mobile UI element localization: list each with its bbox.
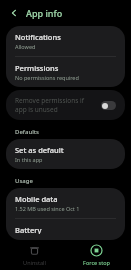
staticText: Permissions: [15, 63, 59, 73]
button[interactable]: Uninstall: [7, 241, 62, 269]
staticText: Remove permissions if app is unused: [15, 96, 96, 114]
button[interactable]: Force stop: [69, 241, 124, 269]
staticText: Allowed: [15, 43, 36, 50]
staticText: 1.52 MB used since Oct 1: [15, 205, 80, 212]
staticText: Force stop: [83, 259, 110, 266]
staticText: Battery: [15, 225, 42, 234]
staticText: Uninstall: [23, 259, 46, 266]
button[interactable]: Set as default: [6, 139, 125, 169]
staticText: Notifications: [15, 32, 61, 42]
staticText: App info: [26, 7, 63, 19]
staticText: Mobile data: [15, 194, 58, 204]
button[interactable]: Back: [7, 6, 21, 20]
button[interactable]: Mobile data: [6, 188, 125, 218]
button[interactable]: Remove permissions if app is unused: [6, 90, 125, 120]
button[interactable]: Notifications: [6, 26, 125, 56]
staticText: Set as default: [15, 145, 64, 155]
staticText: Usage: [15, 177, 33, 185]
staticText: Defaults: [15, 128, 40, 136]
button[interactable]: Permissions: [6, 57, 125, 87]
button[interactable]: Battery: [6, 219, 125, 240]
staticText: No permissions required: [15, 74, 79, 81]
staticText: In this app: [15, 156, 43, 163]
